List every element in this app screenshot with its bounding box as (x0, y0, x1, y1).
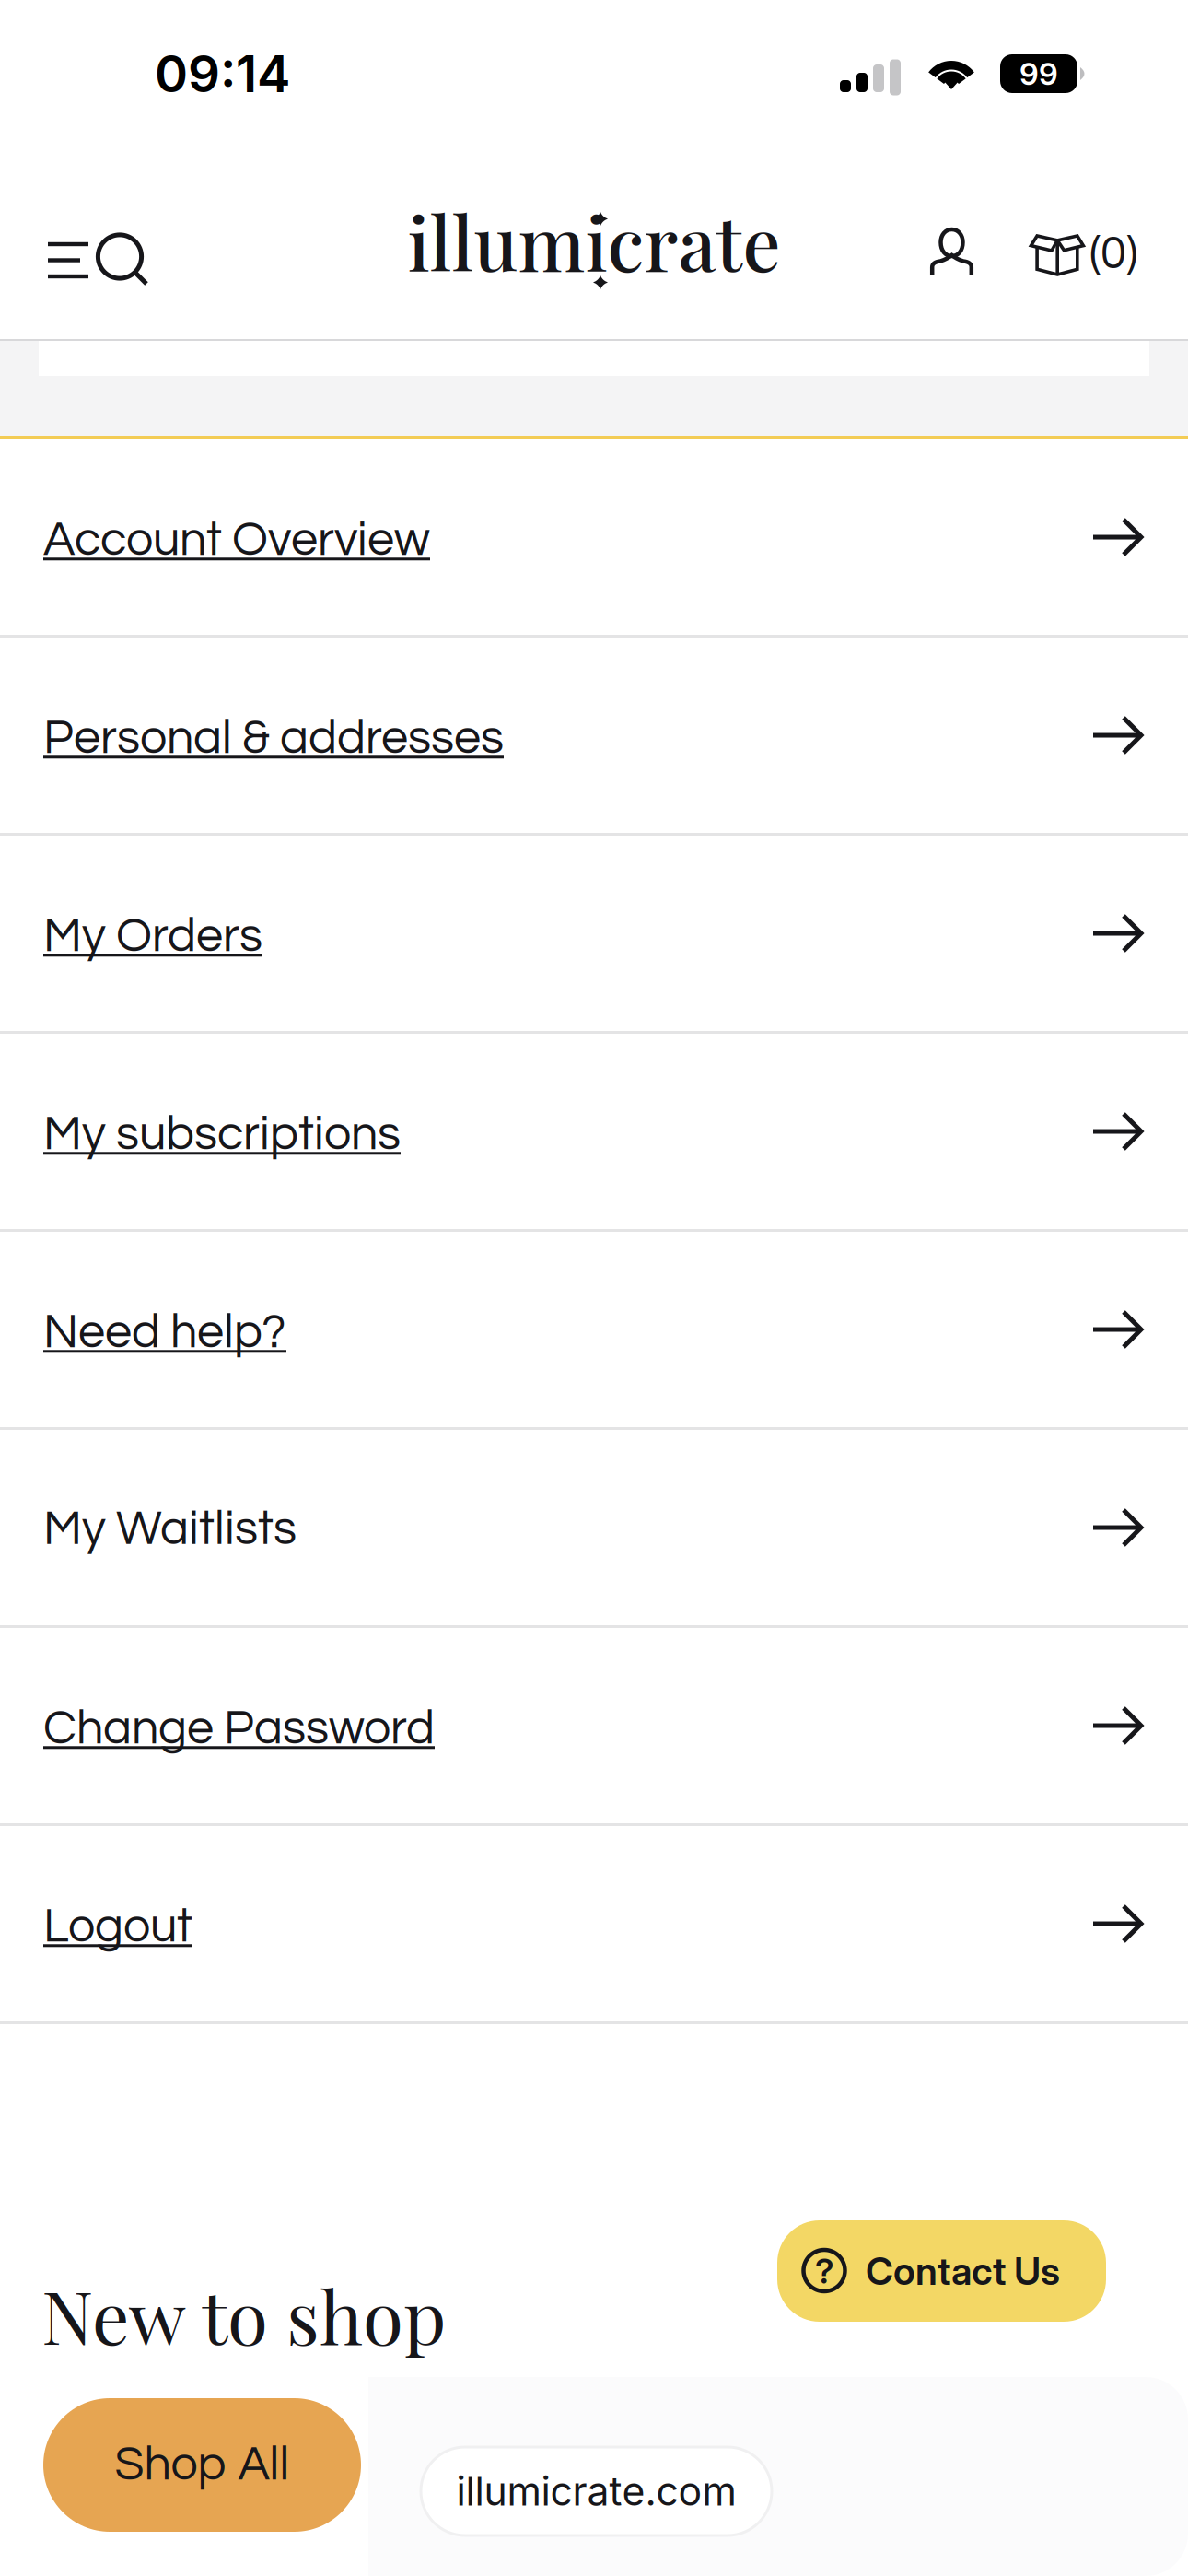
button[interactable]: Account (917, 189, 1031, 298)
button[interactable]: Need help? (0, 1232, 1188, 1427)
button[interactable]: Logout (0, 1826, 1188, 2021)
button[interactable]: Personal & addresses (0, 638, 1188, 833)
staticText: illumicrate.com (456, 2467, 736, 2515)
button[interactable]: Shop All (43, 2398, 361, 2532)
staticText: illumicrate (408, 191, 780, 290)
staticText: ? (815, 2250, 834, 2292)
staticText: Contact Us (866, 2248, 1060, 2294)
button[interactable]: Menu and search (0, 187, 169, 299)
staticText: 99 (1019, 55, 1058, 92)
staticText: Personal & addresses (43, 714, 504, 763)
button[interactable]: Cart, 0 items (1031, 184, 1188, 303)
button[interactable]: illumicrate home (408, 186, 780, 300)
staticText: My subscriptions (43, 1110, 401, 1159)
staticText: My Waitlists (43, 1505, 297, 1554)
staticText: Shop All (115, 2440, 290, 2490)
staticText: 09:14 (155, 43, 290, 104)
button[interactable]: illumicrate.com (421, 2447, 772, 2535)
staticText: Change Password (43, 1704, 435, 1754)
staticText: Account Overview (43, 516, 430, 565)
button[interactable]: My Waitlists (0, 1430, 1188, 1625)
staticText: Need help? (43, 1308, 286, 1357)
button[interactable]: ? (777, 2220, 1106, 2322)
button[interactable]: My subscriptions (0, 1034, 1188, 1229)
button[interactable]: Account Overview (0, 439, 1188, 635)
staticText: Logout (43, 1902, 192, 1952)
button[interactable]: My Orders (0, 836, 1188, 1031)
button[interactable]: Change Password (0, 1628, 1188, 1823)
staticText: (0) (1089, 230, 1137, 278)
staticText: My Orders (43, 912, 262, 961)
staticText: New to shop (41, 2265, 446, 2363)
